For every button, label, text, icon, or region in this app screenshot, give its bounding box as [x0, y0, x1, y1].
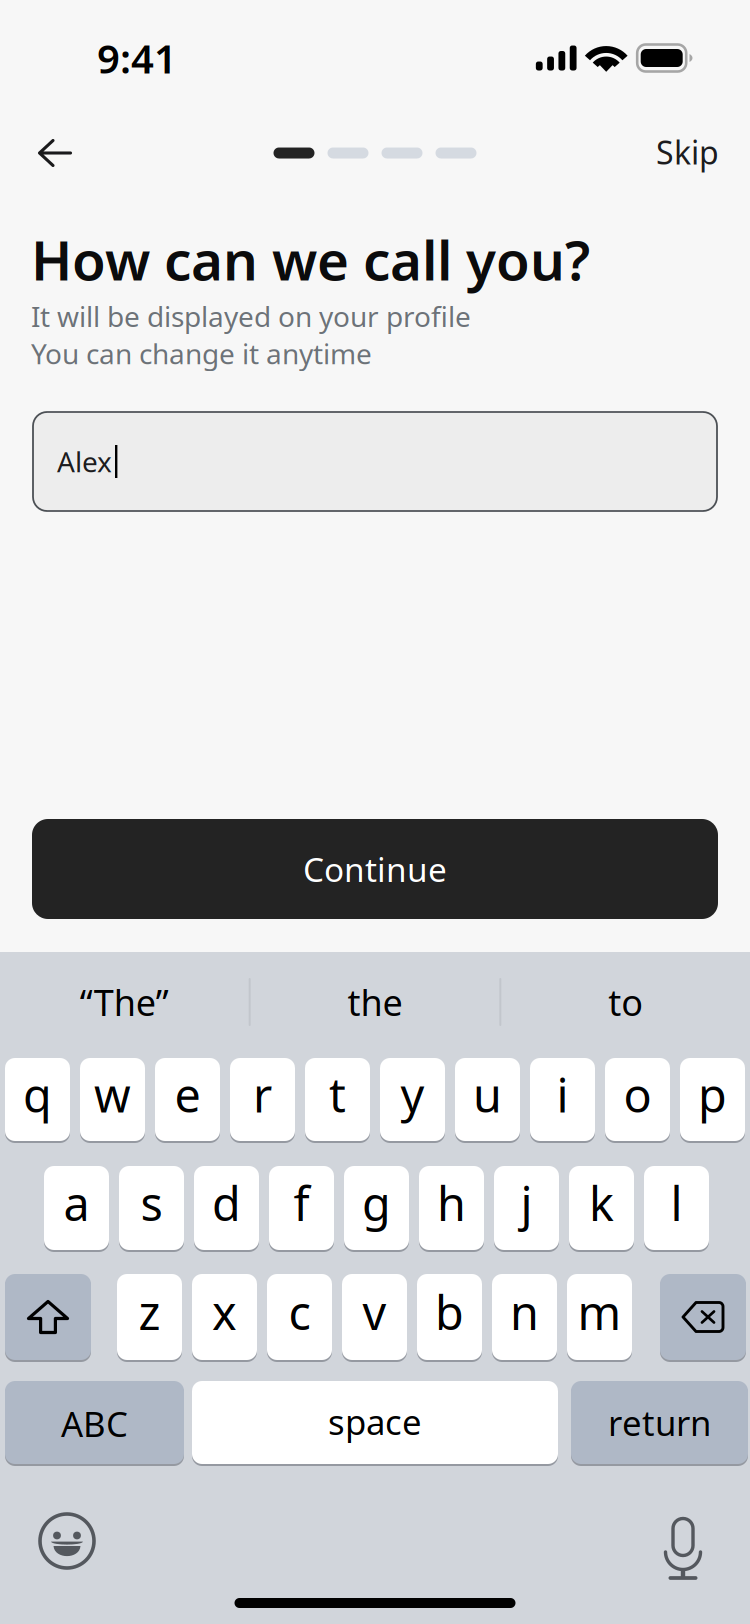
staticText: ABC — [61, 1400, 128, 1446]
staticText: How can we call you? — [31, 223, 590, 296]
staticText: y — [400, 1063, 424, 1125]
staticText: e — [174, 1063, 200, 1125]
button[interactable]: s — [119, 1166, 184, 1250]
staticText: q — [23, 1063, 52, 1125]
button[interactable]: d — [194, 1166, 259, 1250]
button[interactable]: t — [305, 1058, 370, 1141]
button[interactable]: e — [155, 1058, 220, 1141]
staticText: p — [698, 1063, 727, 1125]
staticText: Alex — [57, 443, 112, 480]
button[interactable]: Emoji — [38, 1512, 96, 1570]
button[interactable]: ABC — [5, 1381, 184, 1464]
button[interactable]: space — [192, 1381, 558, 1464]
button[interactable]: Continue — [32, 819, 718, 919]
button[interactable]: b — [417, 1274, 482, 1360]
staticText: r — [253, 1063, 272, 1125]
staticText: t — [329, 1063, 346, 1125]
button[interactable]: m — [567, 1274, 632, 1360]
staticText: a — [63, 1172, 89, 1234]
button[interactable]: n — [492, 1274, 557, 1360]
staticText: “The” — [80, 978, 169, 1026]
button[interactable]: y — [380, 1058, 445, 1141]
button[interactable]: Back — [24, 122, 86, 184]
button[interactable]: c — [267, 1274, 332, 1360]
button[interactable]: return — [571, 1381, 748, 1464]
button[interactable]: u — [455, 1058, 520, 1141]
staticText: k — [589, 1172, 614, 1234]
staticText: u — [473, 1063, 502, 1125]
button[interactable]: Dictation — [664, 1506, 712, 1576]
staticText: c — [288, 1281, 310, 1343]
staticText: Continue — [303, 847, 447, 891]
button[interactable]: to — [501, 952, 750, 1052]
staticText: f — [293, 1172, 309, 1234]
staticText: z — [138, 1281, 160, 1343]
staticText: It will be displayed on your profile — [31, 298, 471, 335]
button[interactable]: p — [680, 1058, 745, 1141]
button[interactable]: z — [117, 1274, 182, 1360]
staticText: m — [577, 1281, 621, 1343]
staticText: 9:41 — [97, 31, 177, 84]
staticText: You can change it anytime — [31, 335, 372, 372]
button[interactable]: j — [494, 1166, 559, 1250]
staticText: b — [435, 1281, 464, 1343]
staticText: w — [94, 1063, 131, 1125]
staticText: g — [362, 1172, 391, 1234]
staticText: l — [670, 1172, 682, 1234]
button[interactable]: f — [269, 1166, 334, 1250]
button[interactable]: r — [230, 1058, 295, 1141]
staticText: the — [347, 978, 402, 1026]
staticText: space — [328, 1398, 422, 1444]
button[interactable]: l — [644, 1166, 709, 1250]
staticText: n — [510, 1281, 539, 1343]
button[interactable]: k — [569, 1166, 634, 1250]
staticText: Skip — [656, 131, 719, 173]
button[interactable]: Skip — [656, 122, 719, 184]
button[interactable]: “The” — [0, 952, 249, 1052]
button[interactable]: a — [44, 1166, 109, 1250]
button[interactable]: the — [251, 952, 499, 1052]
button[interactable]: g — [344, 1166, 409, 1250]
staticText: x — [212, 1281, 237, 1343]
button[interactable]: i — [530, 1058, 595, 1141]
staticText: d — [212, 1172, 241, 1234]
button[interactable]: x — [192, 1274, 257, 1360]
button[interactable]: v — [342, 1274, 407, 1360]
button[interactable]: o — [605, 1058, 670, 1141]
button[interactable]: h — [419, 1166, 484, 1250]
staticText: o — [623, 1063, 651, 1125]
staticText: v — [362, 1281, 386, 1343]
staticText: to — [608, 978, 643, 1026]
staticText: s — [140, 1172, 162, 1234]
button[interactable]: q — [5, 1058, 70, 1141]
staticText: j — [520, 1172, 532, 1234]
button[interactable]: Delete — [660, 1274, 746, 1360]
staticText: h — [437, 1172, 466, 1234]
button[interactable]: w — [80, 1058, 145, 1141]
button[interactable]: Shift — [5, 1274, 91, 1360]
staticText: i — [556, 1063, 568, 1125]
staticText: return — [608, 1399, 711, 1445]
